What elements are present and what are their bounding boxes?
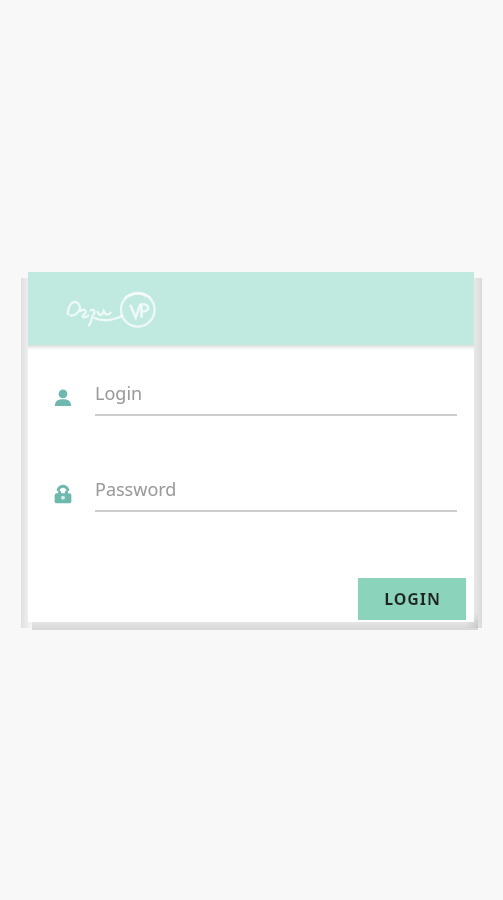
button[interactable]: Login [28, 381, 474, 433]
other: Login [49, 385, 77, 413]
button[interactable]: LOGIN [358, 578, 466, 620]
staticText: Password [95, 477, 177, 502]
other: Password [49, 481, 77, 509]
button[interactable]: Password [28, 477, 474, 529]
staticText: Login [95, 381, 143, 406]
staticText: LOGIN [384, 588, 441, 610]
